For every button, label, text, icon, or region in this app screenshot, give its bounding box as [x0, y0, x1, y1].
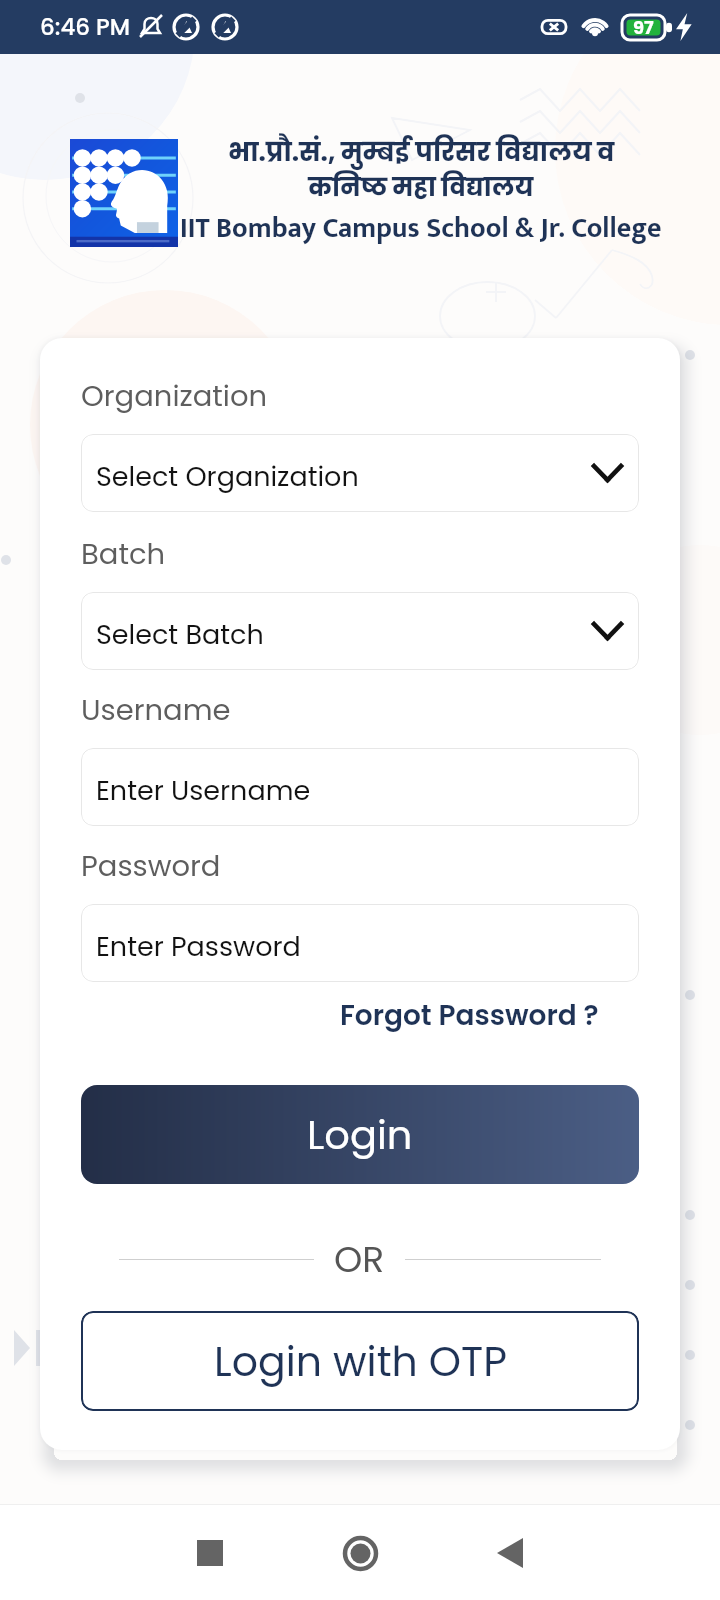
staticText: Login with OTP [214, 1333, 507, 1390]
button[interactable]: Forgot Password ? [340, 996, 639, 1035]
button[interactable]: Enter Username [81, 748, 639, 826]
staticText: कनिष्ठ महा विद्यालय [308, 170, 534, 205]
staticText: 97 [633, 15, 654, 40]
staticText: Enter Username [96, 772, 311, 810]
staticText: Username [81, 690, 231, 731]
button[interactable]: Select Batch [81, 592, 639, 670]
staticText: भा.प्रौ.सं., मुम्बई परिसर विद्यालय व [228, 134, 615, 170]
button[interactable]: Select Organization [81, 434, 639, 512]
staticText: 6:46 PM [40, 11, 130, 43]
staticText: Select Organization [96, 458, 359, 496]
staticText: IIT Bombay Campus School & Jr. College [180, 205, 662, 252]
button[interactable]: Login [81, 1085, 639, 1184]
staticText: Login [307, 1107, 413, 1163]
button[interactable]: Login with OTP [81, 1311, 639, 1411]
staticText: OR [334, 1234, 385, 1284]
staticText: Organization [81, 376, 268, 417]
staticText: Enter Password [96, 928, 301, 966]
button[interactable]: Back [480, 1523, 540, 1583]
staticText: Batch [81, 534, 166, 575]
button[interactable]: Recents [180, 1523, 240, 1583]
staticText: Select Batch [96, 616, 264, 654]
button[interactable]: Enter Password [81, 904, 639, 982]
button[interactable]: Home [330, 1523, 390, 1583]
staticText: Password [81, 846, 221, 887]
